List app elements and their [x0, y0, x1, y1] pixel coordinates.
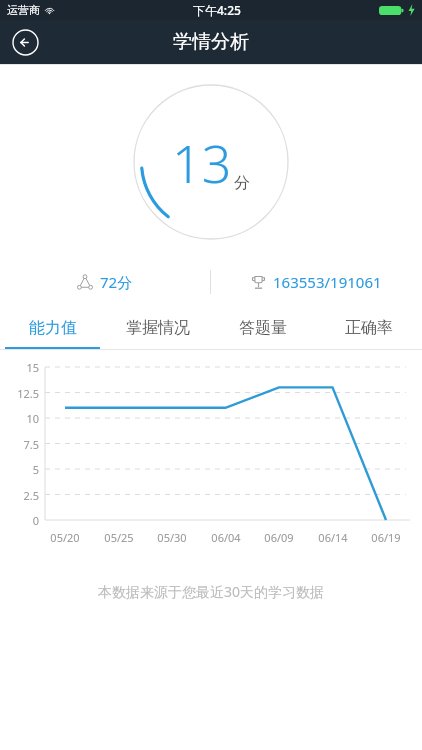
- staticText: 13: [172, 127, 232, 198]
- button[interactable]: 答题量: [210, 306, 316, 349]
- staticText: 分: [234, 173, 250, 193]
- staticText: 05/20: [50, 530, 80, 545]
- staticText: 能力值: [29, 318, 77, 338]
- staticText: 答题量: [239, 318, 287, 338]
- staticText: 0: [32, 513, 39, 528]
- staticText: 10: [26, 411, 39, 426]
- staticText: 运营商: [7, 3, 40, 17]
- staticText: 163553/191061: [273, 272, 382, 292]
- staticText: 15: [26, 360, 39, 375]
- staticText: 下午4:25: [193, 2, 241, 18]
- staticText: 06/14: [318, 530, 348, 545]
- staticText: 05/25: [104, 530, 134, 545]
- staticText: 本数据来源于您最近30天的学习数据: [0, 582, 422, 601]
- staticText: 7.5: [23, 437, 39, 452]
- button[interactable]: 掌握情况: [105, 306, 210, 349]
- button[interactable]: 163553/191061: [211, 258, 422, 306]
- staticText: 72分: [100, 272, 133, 292]
- staticText: 06/04: [211, 530, 241, 545]
- staticText: 学情分析: [173, 30, 249, 54]
- staticText: 2.5: [23, 488, 39, 503]
- button[interactable]: 72分: [0, 258, 210, 306]
- staticText: 正确率: [345, 318, 393, 338]
- staticText: 06/09: [264, 530, 294, 545]
- button[interactable]: 返回: [9, 26, 41, 58]
- staticText: 5: [32, 462, 39, 477]
- staticText: 掌握情况: [126, 318, 190, 338]
- staticText: 12.5: [17, 386, 39, 401]
- button[interactable]: 能力值: [0, 306, 105, 349]
- staticText: 06/19: [371, 530, 401, 545]
- staticText: 05/30: [157, 530, 187, 545]
- button[interactable]: 正确率: [316, 306, 422, 349]
